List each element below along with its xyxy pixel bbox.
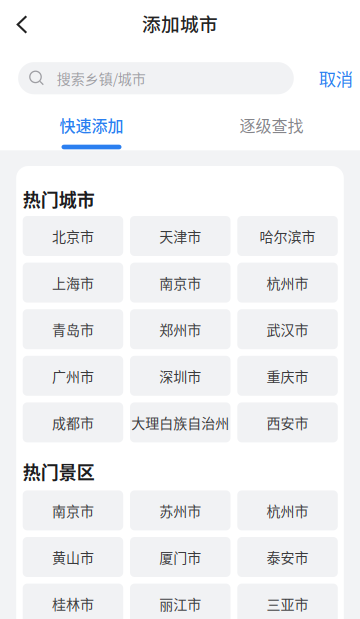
button[interactable]: 黄山市 <box>23 537 123 577</box>
button[interactable]: 丽江市 <box>130 584 230 619</box>
button[interactable]: 重庆市 <box>237 356 338 396</box>
button[interactable]: 南京市 <box>130 263 230 303</box>
staticText: 杭州市 <box>266 500 308 521</box>
button[interactable]: 杭州市 <box>237 263 338 303</box>
staticText: 泰安市 <box>266 547 308 567</box>
staticText: 武汉市 <box>266 319 308 339</box>
staticText: 厦门市 <box>159 547 201 567</box>
staticText: 广州市 <box>52 366 94 386</box>
button[interactable]: 逐级查找 <box>181 105 360 149</box>
staticText: 哈尔滨市 <box>259 226 315 246</box>
staticText: 南京市 <box>159 272 201 293</box>
staticText: 桂林市 <box>52 593 94 614</box>
staticText: 黄山市 <box>52 547 94 567</box>
staticText: 逐级查找 <box>239 113 303 137</box>
staticText: 杭州市 <box>266 272 308 293</box>
staticText: 热门景区 <box>23 458 95 484</box>
button[interactable]: 郑州市 <box>130 309 230 349</box>
button[interactable]: 成都市 <box>23 402 123 442</box>
staticText: 上海市 <box>52 272 94 293</box>
staticText: 添加城市 <box>142 9 218 36</box>
staticText: 南京市 <box>52 500 94 521</box>
button[interactable]: 桂林市 <box>23 584 123 619</box>
staticText: 深圳市 <box>159 366 201 386</box>
button[interactable]: 广州市 <box>23 356 123 396</box>
staticText: 取消 <box>319 66 353 91</box>
button[interactable]: 深圳市 <box>130 356 230 396</box>
button[interactable]: 苏州市 <box>130 490 230 530</box>
button[interactable]: 上海市 <box>23 263 123 303</box>
button[interactable]: 泰安市 <box>237 537 338 577</box>
staticText: 天津市 <box>159 226 201 246</box>
button[interactable]: 快速添加 <box>1 105 181 149</box>
staticText: 成都市 <box>52 412 94 433</box>
staticText: 郑州市 <box>159 319 201 339</box>
button[interactable]: 西安市 <box>237 402 338 442</box>
button[interactable]: 厦门市 <box>130 537 230 577</box>
button[interactable]: 大理白族自治州 <box>130 402 230 442</box>
button[interactable]: 杭州市 <box>237 490 338 530</box>
staticText: 搜索乡镇/城市 <box>57 68 146 88</box>
staticText: 丽江市 <box>159 593 201 614</box>
staticText: 快速添加 <box>59 113 123 137</box>
button[interactable]: 哈尔滨市 <box>237 216 338 256</box>
button[interactable]: 北京市 <box>23 216 123 256</box>
staticText: 热门城市 <box>23 186 95 212</box>
button[interactable]: 取消 <box>294 60 360 96</box>
button[interactable]: Back <box>0 1 44 47</box>
staticText: 西安市 <box>266 412 308 433</box>
button[interactable]: 搜索乡镇/城市 <box>18 62 294 94</box>
staticText: 北京市 <box>52 226 94 246</box>
button[interactable]: 武汉市 <box>237 309 338 349</box>
button[interactable]: 三亚市 <box>237 584 338 619</box>
button[interactable]: 青岛市 <box>23 309 123 349</box>
staticText: 三亚市 <box>266 593 308 614</box>
staticText: 重庆市 <box>266 366 308 386</box>
button[interactable]: 南京市 <box>23 490 123 530</box>
staticText: 青岛市 <box>52 319 94 339</box>
button[interactable]: 天津市 <box>130 216 230 256</box>
staticText: 大理白族自治州 <box>131 412 229 433</box>
staticText: 苏州市 <box>159 500 201 521</box>
